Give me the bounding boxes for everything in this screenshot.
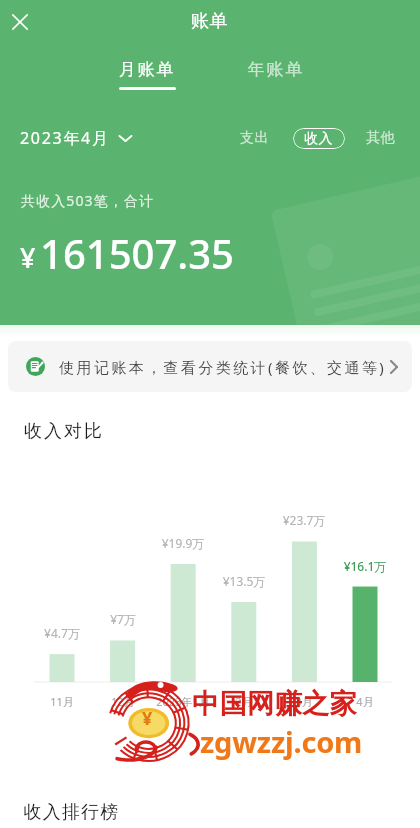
staticText: 2023年4月: [20, 127, 110, 149]
staticText: ¥: [142, 706, 153, 731]
button[interactable]: 月账单: [117, 59, 177, 90]
staticText: 11月: [22, 694, 102, 709]
button[interactable]: 收入: [293, 128, 345, 149]
staticText: ¥16.1万: [325, 558, 405, 574]
staticText: 其他: [366, 129, 396, 147]
staticText: 月账单: [119, 59, 176, 80]
staticText: ¥19.9万: [143, 535, 223, 551]
button[interactable]: Close: [0, 2, 40, 42]
staticText: 161507.35: [40, 226, 234, 280]
staticText: ¥23.7万: [264, 512, 344, 528]
staticText: 12月: [83, 694, 163, 709]
staticText: 账单: [191, 10, 229, 33]
staticText: ¥7万: [83, 611, 163, 627]
button[interactable]: 使用记账本，查看分类统计(餐饮、交通等): [8, 341, 412, 392]
staticText: 共收入503笔，合计: [21, 191, 155, 210]
staticText: 2023年1月: [143, 694, 223, 709]
button[interactable]: 年账单: [246, 59, 306, 80]
staticText: ¥13.5万: [204, 573, 284, 589]
staticText: 2月: [204, 694, 284, 709]
staticText: 收入对比: [23, 420, 103, 443]
staticText: ¥4.7万: [22, 625, 102, 641]
button[interactable]: 支出: [234, 125, 276, 151]
button[interactable]: 其他: [364, 125, 398, 151]
staticText: 中国网赚之家: [192, 687, 357, 721]
staticText: ¥: [20, 239, 36, 276]
staticText: 收入: [304, 130, 334, 148]
staticText: 3月: [264, 694, 344, 709]
staticText: 使用记账本，查看分类统计(餐饮、交通等): [58, 357, 385, 377]
staticText: zgwzzj.com: [200, 722, 363, 761]
staticText: 收入排行榜: [23, 801, 119, 824]
button[interactable]: 2023年4月: [20, 127, 133, 149]
staticText: 年账单: [246, 59, 306, 80]
staticText: 支出: [240, 129, 270, 147]
staticText: 4月: [325, 694, 405, 709]
